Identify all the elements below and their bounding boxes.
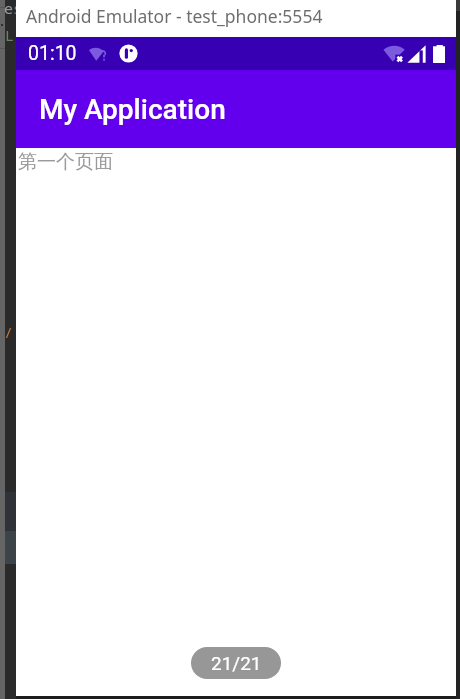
other: Wi-Fi unknown	[89, 46, 108, 62]
other: Notification	[119, 44, 138, 63]
other: Cellular signal	[407, 45, 426, 63]
other: Battery	[433, 45, 445, 63]
staticText: Android Emulator - test_phone:5554	[26, 4, 323, 28]
button[interactable]: 21/21	[191, 647, 281, 679]
staticText: s	[13, 0, 23, 18]
staticText: 01:10	[28, 42, 77, 65]
staticText: 第一个页面	[18, 150, 113, 174]
other: No Wi-Fi	[383, 44, 405, 63]
staticText: L	[5, 25, 15, 45]
staticText: 21/21	[211, 652, 262, 674]
staticText: e	[4, 0, 14, 18]
staticText: My Application	[39, 93, 226, 126]
staticText: /	[4, 322, 14, 342]
